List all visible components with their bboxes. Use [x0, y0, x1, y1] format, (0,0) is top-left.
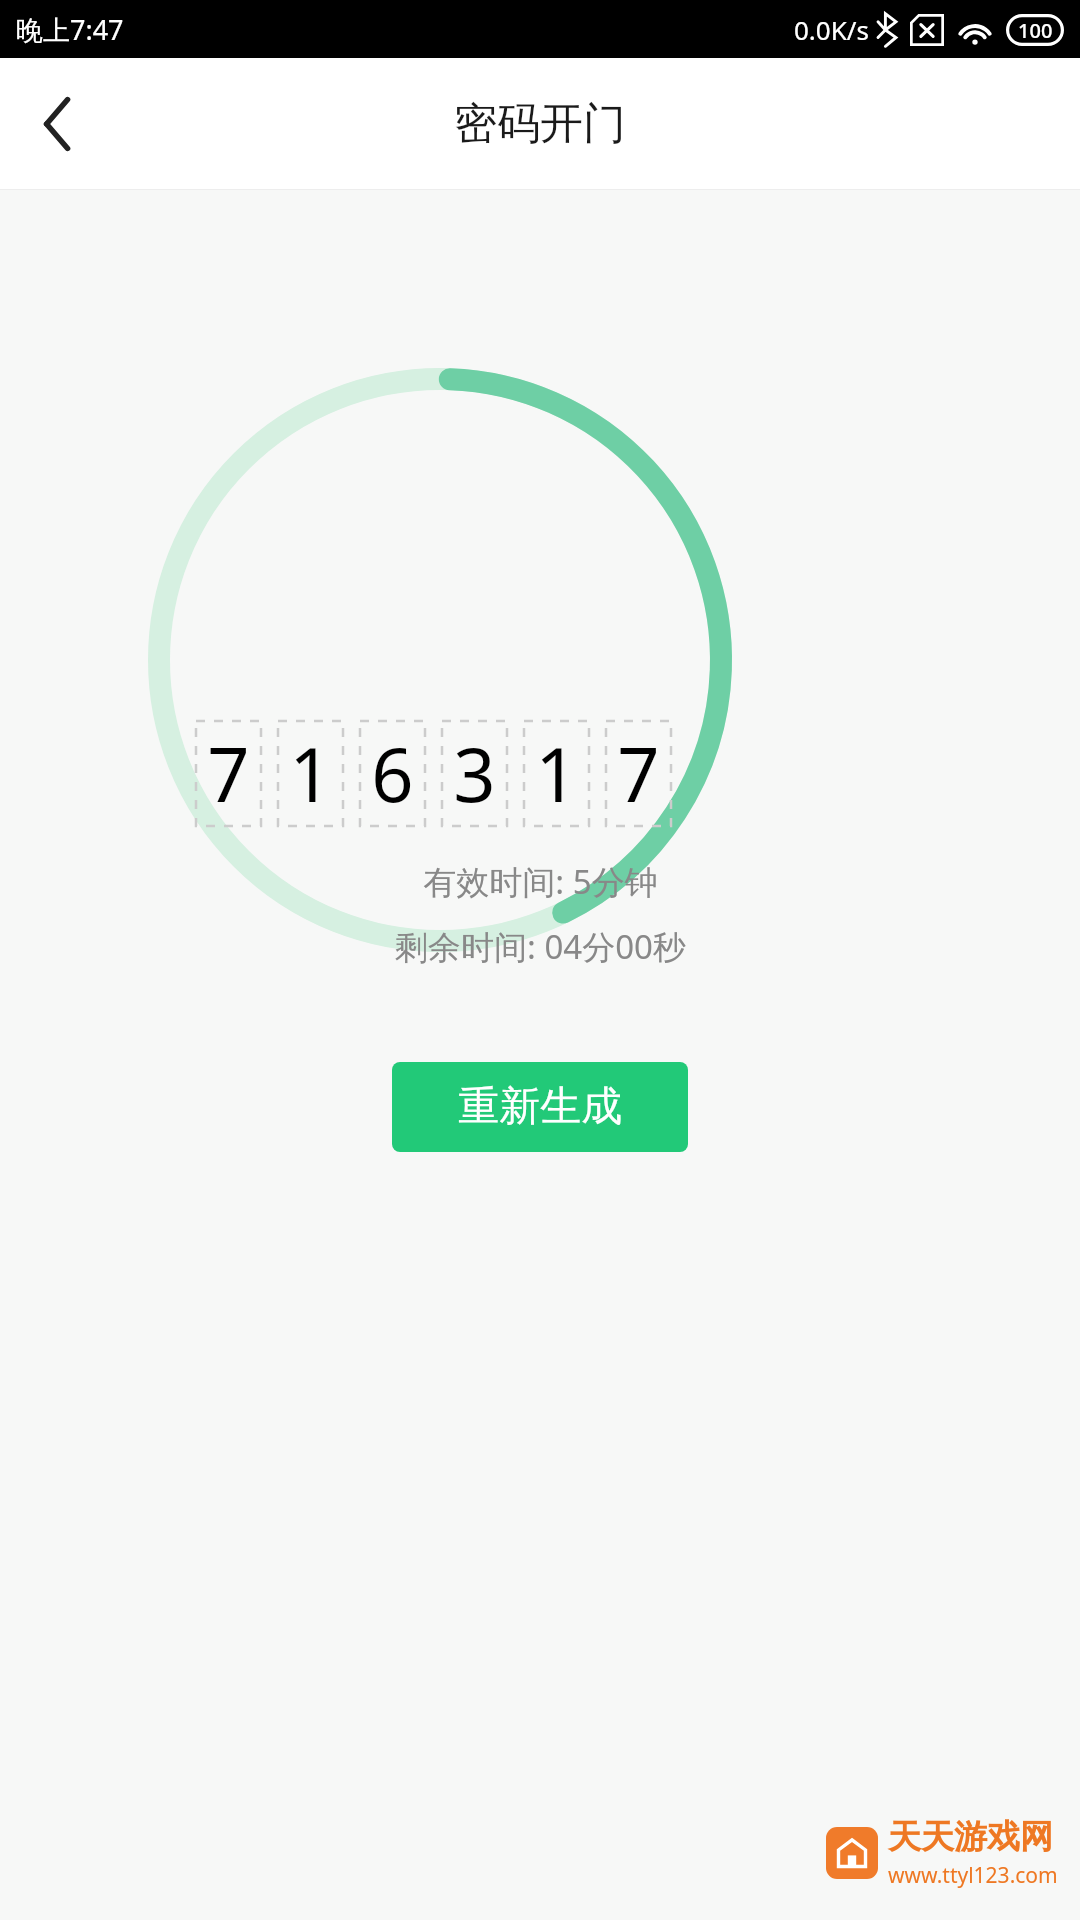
staticText: www.ttyl123.com — [888, 1861, 1058, 1890]
staticText: 100 — [1018, 17, 1053, 44]
button[interactable]: 重新生成 — [392, 1062, 688, 1152]
staticText: 6 — [371, 723, 414, 824]
staticText: 密码开门 — [454, 97, 626, 151]
staticText: 天天游戏网 — [888, 1816, 1053, 1858]
staticText: 7 — [617, 723, 660, 824]
button[interactable]: Back — [22, 88, 94, 160]
staticText: 0.0K/s — [794, 12, 869, 47]
staticText: 重新生成 — [458, 1081, 622, 1133]
staticText: 剩余时间: 04分00秒 — [395, 924, 686, 969]
staticText: 3 — [453, 723, 496, 824]
staticText: 晚上7:47 — [16, 11, 124, 48]
staticText: 有效时间: 5分钟 — [423, 859, 658, 904]
staticText: 1 — [535, 723, 578, 824]
staticText: 1 — [289, 723, 332, 824]
staticText: 7 — [207, 723, 250, 824]
